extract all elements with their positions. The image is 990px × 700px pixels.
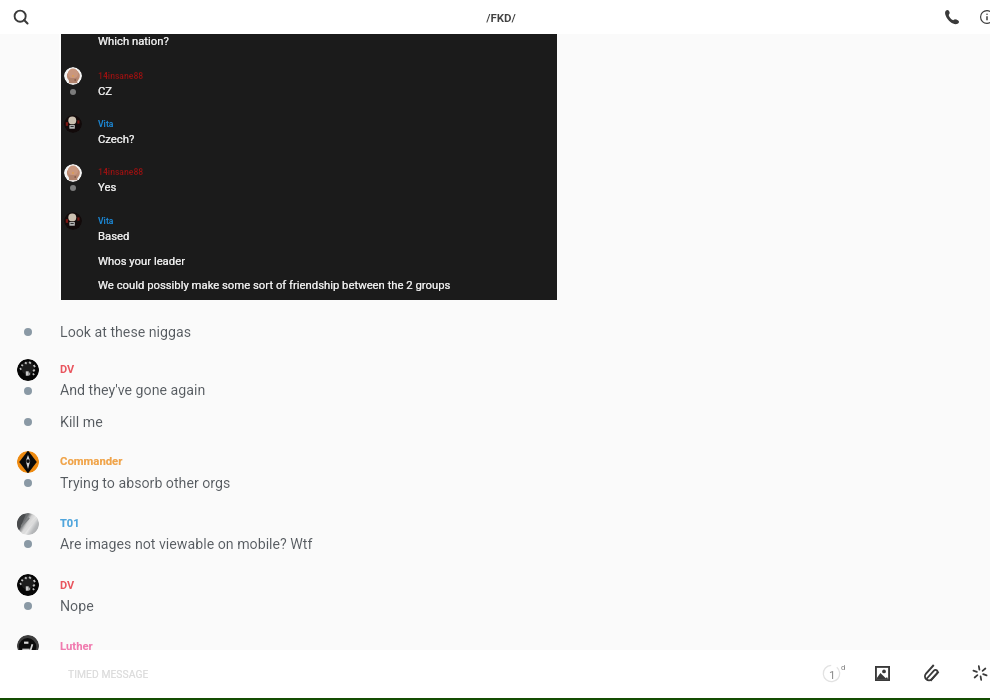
button[interactable]: Group info bbox=[974, 3, 990, 31]
button[interactable]: More actions bbox=[962, 655, 990, 691]
staticText: TIMED MESSAGE bbox=[68, 668, 149, 680]
staticText: Vita bbox=[98, 119, 114, 129]
staticText: T01 bbox=[60, 517, 80, 530]
button[interactable]: Search bbox=[8, 4, 34, 30]
staticText: Which nation? bbox=[98, 35, 169, 48]
button[interactable]: Send photo bbox=[864, 655, 900, 691]
staticText: Luther bbox=[60, 640, 93, 653]
button[interactable]: Attach file bbox=[913, 655, 949, 691]
staticText: /FKD/ bbox=[486, 11, 516, 24]
staticText: And they've gone again bbox=[60, 382, 206, 399]
staticText: 1 bbox=[829, 668, 836, 681]
staticText: Trying to absorb other orgs bbox=[60, 475, 231, 492]
staticText: Whos your leader bbox=[98, 255, 185, 268]
staticText: 14insane88 bbox=[98, 167, 144, 177]
staticText: Yes bbox=[98, 181, 117, 194]
staticText: Vita bbox=[98, 216, 114, 226]
button[interactable]: Message timer bbox=[814, 655, 850, 691]
button[interactable]: Which nation? bbox=[59, 34, 557, 300]
staticText: We could possibly make some sort of frie… bbox=[98, 279, 451, 292]
staticText: Commander bbox=[60, 455, 123, 468]
staticText: Czech? bbox=[98, 133, 135, 146]
button[interactable]: Call bbox=[939, 3, 967, 31]
staticText: d bbox=[841, 663, 846, 672]
staticText: Look at these niggas bbox=[60, 324, 192, 341]
staticText: DV bbox=[60, 363, 75, 376]
staticText: Based bbox=[98, 230, 130, 243]
staticText: Are images not viewable on mobile? Wtf bbox=[60, 536, 313, 553]
staticText: Kill me bbox=[60, 414, 103, 431]
staticText: DV bbox=[60, 579, 75, 592]
staticText: CZ bbox=[98, 85, 113, 98]
staticText: 14insane88 bbox=[98, 71, 144, 81]
staticText: Nope bbox=[60, 598, 94, 615]
